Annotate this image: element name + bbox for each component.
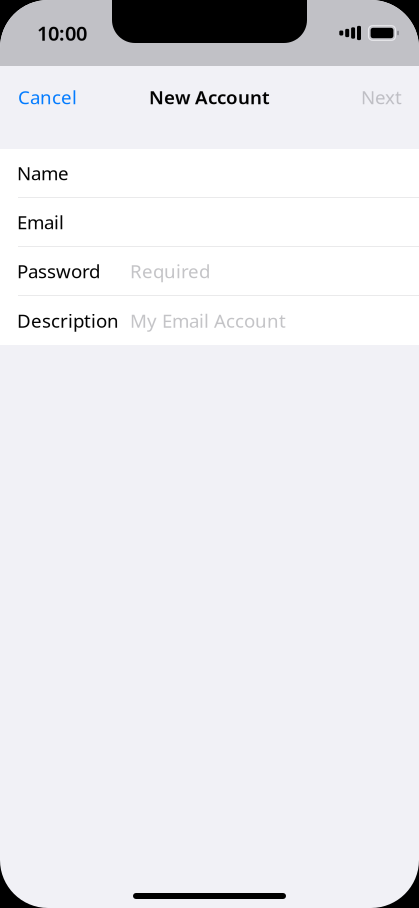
button[interactable]: Cancel (18, 79, 77, 115)
staticText: Required (130, 259, 210, 283)
staticText: Password (17, 259, 100, 283)
button[interactable]: Email (0, 198, 419, 246)
button[interactable]: Description (0, 296, 419, 345)
staticText: New Account (149, 85, 270, 109)
button[interactable]: Password (0, 247, 419, 295)
staticText: Next (361, 85, 402, 109)
staticText: Name (17, 161, 69, 185)
staticText: 10:00 (37, 20, 87, 46)
button[interactable]: Name (0, 149, 419, 197)
staticText: Email (17, 210, 64, 234)
button[interactable]: Next (361, 79, 402, 115)
staticText: Description (17, 308, 119, 333)
staticText: My Email Account (130, 308, 286, 333)
staticText: Cancel (18, 85, 77, 109)
